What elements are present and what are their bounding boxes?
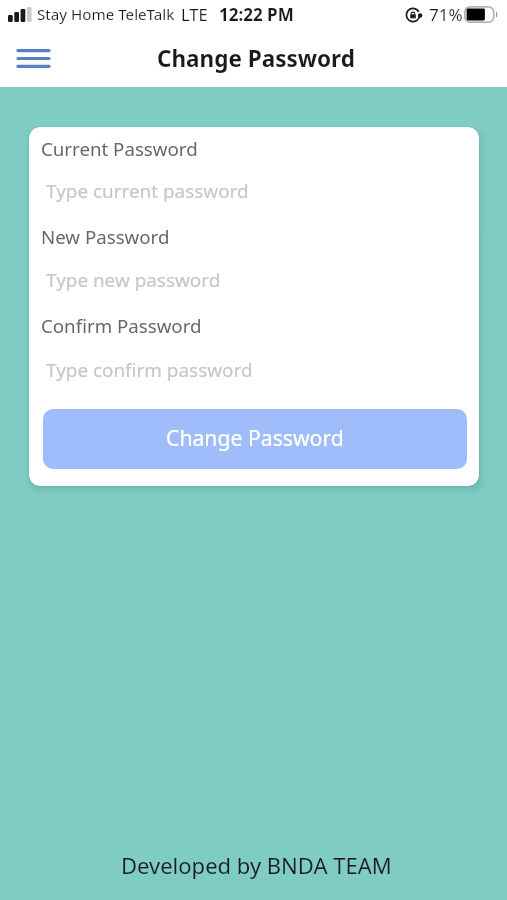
staticText: 12:22 PM <box>219 3 294 26</box>
staticText: Developed by BNDA TEAM <box>121 850 392 880</box>
button[interactable]: Type new password <box>29 253 479 295</box>
button[interactable]: Type current password <box>29 164 479 206</box>
staticText: Type confirm password <box>46 357 253 383</box>
staticText: Type current password <box>46 178 249 204</box>
staticText: Confirm Password <box>41 313 202 338</box>
staticText: 71% <box>429 3 463 26</box>
staticText: Type new password <box>46 267 221 293</box>
staticText: LTE <box>181 3 208 25</box>
button[interactable]: Open navigation menu <box>2 36 65 80</box>
staticText: Change Password <box>166 423 344 452</box>
staticText: Stay Home TeleTalk <box>37 4 175 25</box>
button[interactable]: Type confirm password <box>29 343 479 385</box>
button[interactable]: Change Password <box>43 409 467 469</box>
staticText: New Password <box>41 224 170 249</box>
staticText: Change Password <box>157 43 355 74</box>
staticText: Current Password <box>41 136 198 161</box>
